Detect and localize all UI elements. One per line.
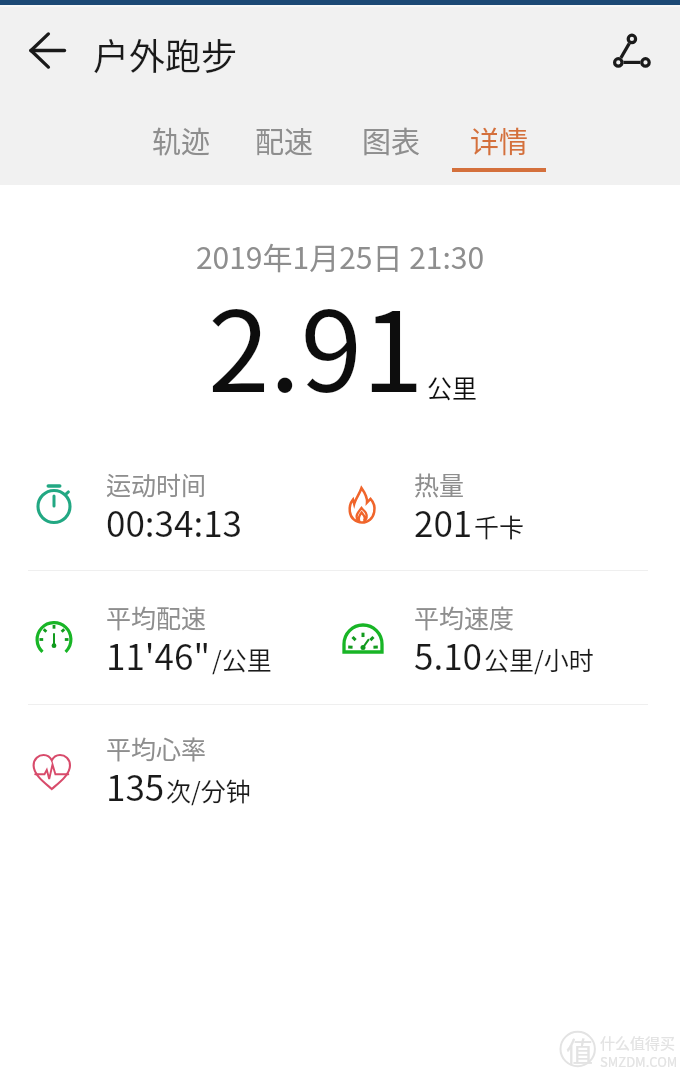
- staticText: 次/分钟: [166, 772, 251, 808]
- staticText: 2.91: [208, 263, 424, 424]
- staticText: 值: [566, 1031, 593, 1070]
- staticText: 平均心率: [106, 730, 207, 766]
- staticText: 千卡: [474, 508, 525, 544]
- button[interactable]: 配速: [232, 119, 336, 180]
- staticText: /公里: [212, 641, 272, 677]
- staticText: SMZDM.COM: [600, 1052, 678, 1071]
- staticText: 平均配速: [106, 599, 207, 635]
- staticText: 公里/小时: [484, 641, 594, 677]
- staticText: 配速: [255, 119, 314, 161]
- staticText: 详情: [470, 119, 529, 161]
- staticText: 户外跑步: [93, 28, 238, 80]
- staticText: 运动时间: [106, 466, 207, 502]
- staticText: 00:34:13: [106, 496, 243, 547]
- staticText: 公里: [427, 369, 478, 405]
- staticText: 轨迹: [152, 119, 211, 161]
- staticText: 什么值得买: [600, 1032, 676, 1054]
- staticText: 图表: [362, 119, 421, 161]
- button[interactable]: Back: [16, 19, 80, 83]
- staticText: 2019年1月25日 21:30: [0, 234, 680, 277]
- button[interactable]: Share: [600, 19, 664, 83]
- staticText: 5.10: [414, 629, 483, 680]
- staticText: 平均速度: [414, 599, 515, 635]
- staticText: 135: [106, 760, 165, 811]
- button[interactable]: 轨迹: [129, 119, 233, 180]
- button[interactable]: 详情: [447, 119, 551, 180]
- button[interactable]: 图表: [339, 119, 443, 180]
- staticText: 201: [414, 496, 473, 547]
- staticText: 11'46": [106, 629, 211, 680]
- staticText: 热量: [414, 466, 465, 502]
